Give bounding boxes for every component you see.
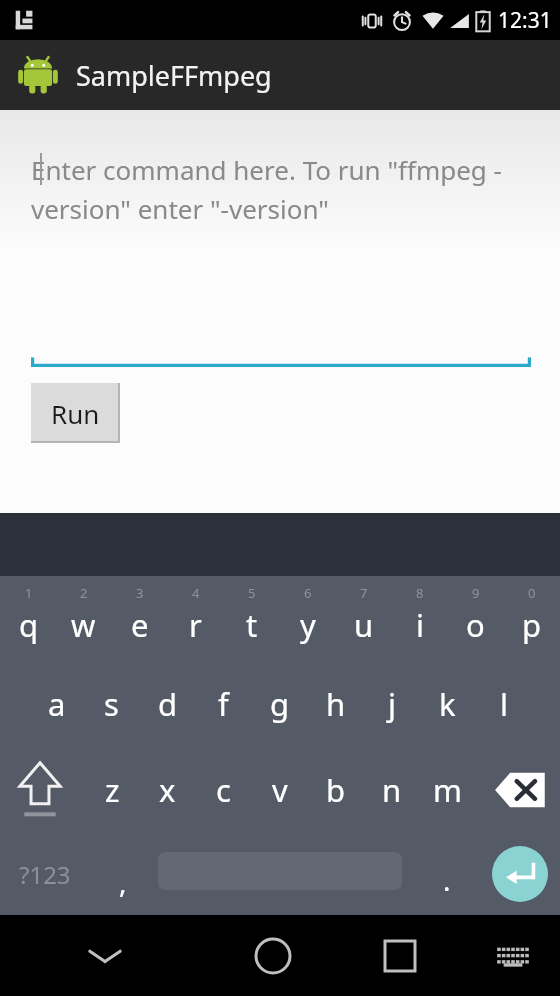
button[interactable]: Run: [31, 383, 120, 443]
staticText: z: [105, 769, 120, 811]
staticText: 8: [416, 584, 424, 602]
button[interactable]: b: [308, 747, 363, 833]
staticText: f: [218, 683, 229, 725]
staticText: 1: [25, 584, 33, 602]
button[interactable]: s: [84, 661, 139, 747]
staticText: 5: [248, 584, 256, 602]
button[interactable]: v: [252, 747, 307, 833]
button[interactable]: 5: [224, 576, 279, 661]
button[interactable]: 3: [112, 576, 167, 661]
button[interactable]: ?123: [0, 833, 90, 915]
button[interactable]: .: [414, 833, 480, 915]
staticText: l: [500, 683, 508, 725]
staticText: 0: [528, 584, 536, 602]
staticText: j: [388, 683, 396, 725]
button[interactable]: Backspace: [482, 747, 560, 833]
staticText: 6: [304, 584, 312, 602]
button[interactable]: Hide keyboard: [0, 915, 210, 996]
staticText: 12:31: [498, 6, 552, 35]
button[interactable]: l: [476, 661, 531, 747]
staticText: 7: [360, 584, 368, 602]
button[interactable]: Enter: [480, 833, 560, 915]
button[interactable]: f: [196, 661, 251, 747]
staticText: u: [354, 604, 374, 646]
button[interactable]: j: [364, 661, 419, 747]
staticText: h: [326, 683, 346, 725]
staticText: d: [158, 683, 178, 725]
staticText: a: [48, 683, 66, 725]
staticText: 9: [472, 584, 480, 602]
button[interactable]: ,: [90, 833, 156, 915]
button[interactable]: 4: [168, 576, 223, 661]
button[interactable]: 0: [504, 576, 559, 661]
staticText: 3: [136, 584, 144, 602]
button[interactable]: k: [420, 661, 475, 747]
staticText: Enter command here. To run "ffmpeg -: [31, 152, 502, 187]
staticText: i: [416, 604, 424, 646]
staticText: t: [246, 604, 258, 646]
staticText: k: [439, 683, 456, 725]
button[interactable]: a: [29, 661, 84, 747]
staticText: ,: [119, 863, 127, 901]
staticText: r: [189, 604, 202, 646]
staticText: g: [270, 683, 290, 725]
staticText: Run: [51, 396, 100, 431]
staticText: 4: [192, 584, 200, 602]
staticText: o: [466, 604, 485, 646]
button[interactable]: d: [140, 661, 195, 747]
staticText: .: [443, 861, 451, 899]
staticText: version" enter "-version": [31, 191, 329, 226]
button[interactable]: n: [364, 747, 419, 833]
button[interactable]: h: [308, 661, 363, 747]
button[interactable]: Space: [158, 833, 402, 915]
staticText: x: [159, 769, 176, 811]
button[interactable]: Recent apps: [335, 915, 465, 996]
button[interactable]: Switch keyboard: [465, 915, 560, 996]
staticText: 2: [80, 584, 88, 602]
staticText: v: [272, 769, 288, 811]
button[interactable]: 1: [1, 576, 56, 661]
staticText: c: [216, 769, 231, 811]
button[interactable]: m: [420, 747, 475, 833]
staticText: SampleFFmpeg: [76, 57, 272, 94]
button[interactable]: 6: [280, 576, 335, 661]
staticText: p: [522, 604, 542, 646]
button[interactable]: Shift: [0, 747, 80, 833]
button[interactable]: 2: [56, 576, 111, 661]
staticText: e: [131, 604, 149, 646]
button[interactable]: 7: [336, 576, 391, 661]
button[interactable]: z: [85, 747, 140, 833]
staticText: ?123: [19, 858, 71, 891]
staticText: s: [104, 683, 119, 725]
staticText: y: [300, 604, 316, 646]
button[interactable]: Enter command here. To run "ffmpeg -: [31, 152, 529, 226]
staticText: m: [433, 769, 462, 811]
button[interactable]: 8: [392, 576, 447, 661]
button[interactable]: Home: [210, 915, 335, 996]
button[interactable]: g: [252, 661, 307, 747]
button[interactable]: c: [196, 747, 251, 833]
staticText: b: [326, 769, 346, 811]
staticText: q: [19, 604, 39, 646]
button[interactable]: x: [140, 747, 195, 833]
staticText: w: [71, 604, 96, 646]
staticText: n: [382, 769, 402, 811]
button[interactable]: 9: [448, 576, 503, 661]
